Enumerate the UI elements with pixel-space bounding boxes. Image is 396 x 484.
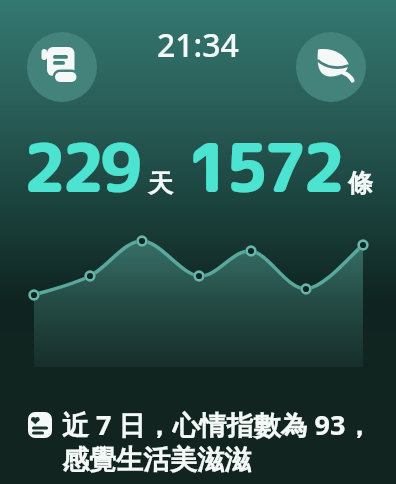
- staticText: 21:34: [157, 23, 239, 67]
- staticText: 1572: [187, 121, 341, 213]
- button[interactable]: 近 7 日，心情指數為 93，: [28, 406, 373, 477]
- staticText: 229: [23, 121, 139, 213]
- staticText: 感覺生活美滋滋: [62, 443, 251, 477]
- staticText: 天: [148, 168, 173, 199]
- staticText: 近 7 日，心情指數為 93，: [62, 406, 373, 443]
- staticText: 條: [348, 168, 373, 199]
- button[interactable]: [27, 32, 97, 102]
- button[interactable]: [296, 32, 366, 102]
